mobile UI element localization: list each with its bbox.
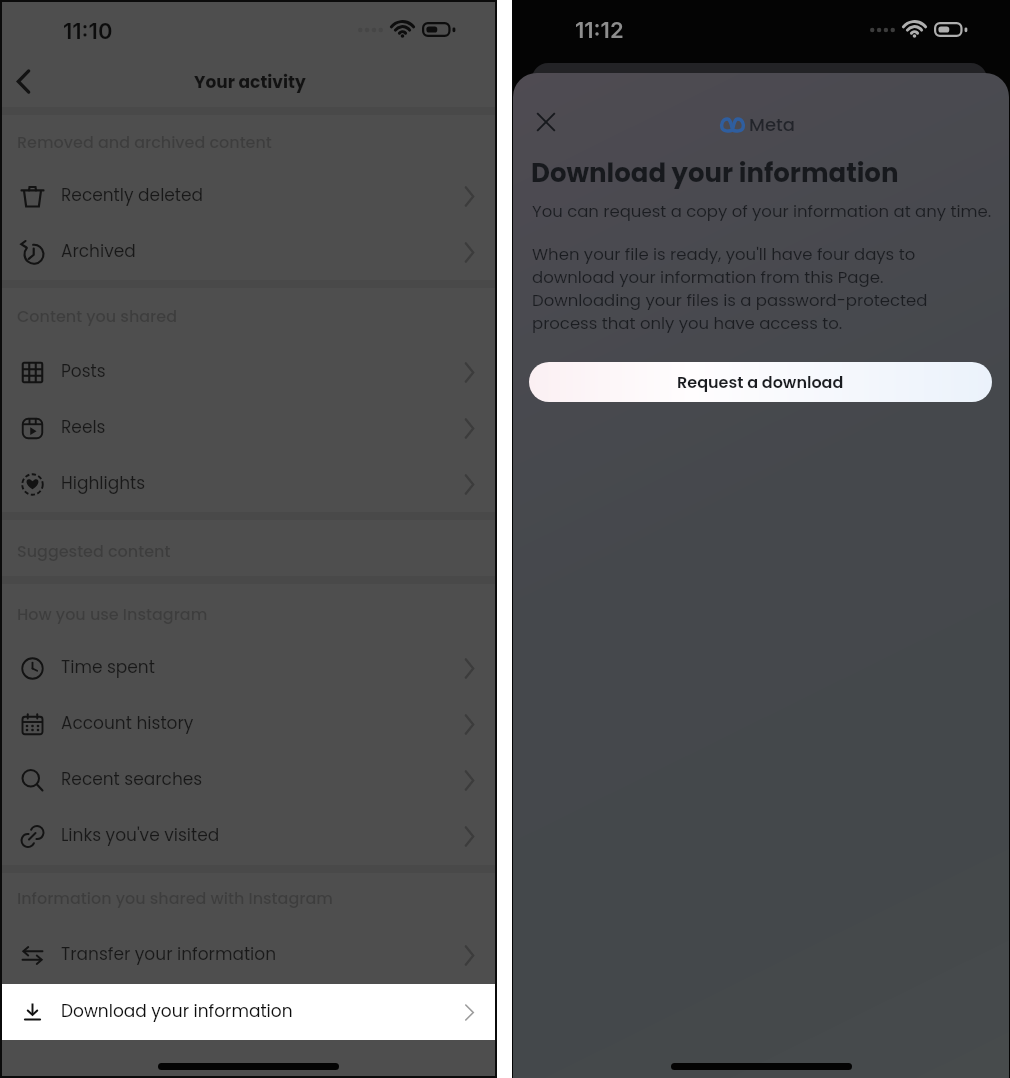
staticText: 11:10 bbox=[63, 18, 113, 45]
button[interactable]: Request a download bbox=[529, 362, 992, 402]
button[interactable]: Transfer your information bbox=[0, 927, 497, 983]
staticText: How you use Instagram bbox=[17, 603, 208, 625]
staticText: You can request a copy of your informati… bbox=[532, 200, 992, 223]
staticText: 11:12 bbox=[575, 17, 624, 44]
staticText: Content you shared bbox=[17, 305, 177, 327]
button[interactable]: Archived bbox=[0, 224, 497, 280]
button[interactable]: Reels bbox=[0, 400, 497, 456]
button[interactable]: Back bbox=[2, 60, 44, 102]
staticText: Reels bbox=[61, 415, 106, 439]
button[interactable]: Highlights bbox=[0, 456, 497, 512]
staticText: Time spent bbox=[61, 655, 155, 679]
staticText: Your activity bbox=[194, 70, 306, 94]
button[interactable]: Time spent bbox=[0, 640, 497, 696]
staticText: Transfer your information bbox=[61, 942, 277, 966]
staticText: Download your information bbox=[61, 999, 293, 1023]
staticText: Information you shared with Instagram bbox=[17, 887, 333, 909]
button[interactable]: Close bbox=[527, 103, 565, 141]
button[interactable]: Links you've visited bbox=[0, 808, 497, 864]
staticText: Removed and archived content bbox=[17, 131, 272, 153]
staticText: Links you've visited bbox=[61, 823, 220, 847]
staticText: Highlights bbox=[61, 471, 146, 495]
staticText: Posts bbox=[61, 359, 106, 383]
button[interactable]: Account history bbox=[0, 696, 497, 752]
staticText: Download your information bbox=[531, 155, 899, 191]
staticText: Recently deleted bbox=[61, 183, 204, 207]
staticText: When your file is ready, you'll have fou… bbox=[532, 243, 928, 335]
staticText: Recent searches bbox=[61, 767, 203, 791]
staticText: Request a download bbox=[677, 371, 844, 393]
staticText: Suggested content bbox=[17, 540, 171, 562]
button[interactable]: Posts bbox=[0, 344, 497, 400]
staticText: Meta bbox=[749, 112, 795, 137]
staticText: Account history bbox=[61, 711, 194, 735]
button[interactable]: Download your information bbox=[0, 984, 497, 1040]
staticText: Archived bbox=[61, 239, 136, 263]
button[interactable]: Recently deleted bbox=[0, 168, 497, 224]
button[interactable]: Recent searches bbox=[0, 752, 497, 808]
